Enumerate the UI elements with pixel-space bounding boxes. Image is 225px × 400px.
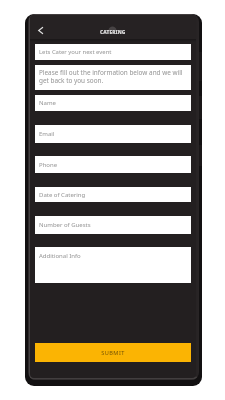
staticText: Name — [39, 99, 56, 107]
button[interactable]: Back — [33, 23, 47, 37]
staticText: Additional Info — [39, 252, 81, 260]
button[interactable]: Date of Catering — [35, 187, 191, 202]
button[interactable]: Number of Guests — [35, 216, 191, 234]
button[interactable]: Name — [35, 95, 191, 111]
button[interactable]: Lets Cater your next event — [35, 44, 191, 60]
staticText: Number of Guests — [39, 221, 91, 229]
button[interactable]: Phone — [35, 156, 191, 173]
button[interactable]: Please fill out the information below an… — [35, 65, 191, 90]
button[interactable]: Email — [35, 125, 191, 143]
staticText: Lets Cater your next event — [39, 48, 112, 56]
staticText: CATERING — [100, 29, 126, 36]
staticText: SUBMIT — [101, 349, 125, 357]
staticText: Phone — [39, 161, 58, 169]
button[interactable]: SUBMIT — [35, 343, 191, 362]
staticText: Date of Catering — [39, 191, 86, 199]
staticText: Email — [39, 130, 55, 138]
staticText: Please fill out the information below an… — [39, 68, 183, 85]
button[interactable]: Additional Info — [35, 247, 191, 283]
